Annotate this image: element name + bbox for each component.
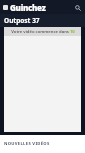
button[interactable]: Guinchez (10, 2, 46, 13)
button[interactable]: Menu (1, 3, 10, 12)
staticText: Votre vidéo commence dans 10 (11, 29, 75, 35)
button[interactable]: Search (73, 3, 82, 12)
staticText: Outpost 37 (4, 16, 40, 25)
button[interactable]: NOUVELLES VIDÉOS (4, 141, 50, 147)
